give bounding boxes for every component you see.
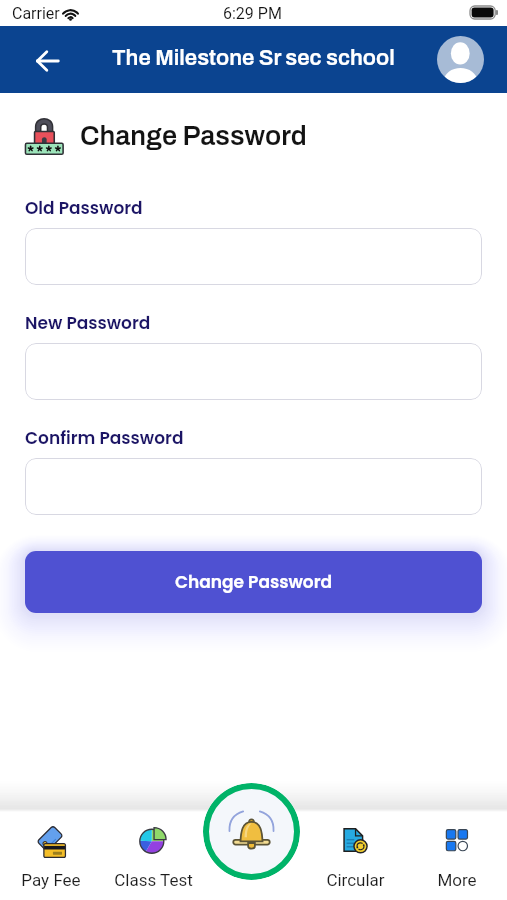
staticText: New Password bbox=[25, 311, 151, 335]
staticText: The Milestone Sr sec school bbox=[112, 46, 395, 70]
staticText: Change Password bbox=[80, 121, 307, 150]
staticText: Confirm Password bbox=[25, 426, 184, 450]
button[interactable]: Notifications bbox=[203, 783, 300, 880]
staticText: Pay Fee bbox=[21, 870, 81, 890]
staticText: Circular bbox=[326, 870, 385, 890]
staticText: Old Password bbox=[25, 196, 143, 220]
button[interactable]: Profile bbox=[437, 36, 484, 83]
staticText: Carrier bbox=[12, 4, 60, 23]
staticText: 6:29 PM bbox=[223, 4, 282, 23]
staticText: Class Test bbox=[114, 870, 193, 890]
button[interactable]: Pay Fee bbox=[0, 806, 102, 900]
button[interactable]: Circular bbox=[305, 806, 406, 900]
button[interactable] bbox=[25, 228, 482, 285]
button[interactable]: Class Test bbox=[102, 806, 204, 900]
staticText: Change Password bbox=[175, 570, 333, 594]
button[interactable]: Change Password bbox=[25, 551, 482, 613]
button[interactable]: Back bbox=[23, 40, 71, 82]
button[interactable] bbox=[25, 458, 482, 515]
staticText: More bbox=[437, 870, 477, 890]
button[interactable]: More bbox=[406, 806, 507, 900]
button[interactable] bbox=[25, 343, 482, 400]
